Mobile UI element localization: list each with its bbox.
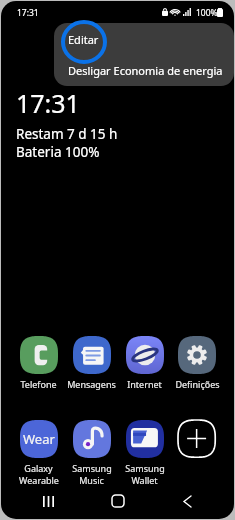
staticText: 100% (196, 7, 218, 19)
staticText: Wearable (19, 474, 59, 486)
button[interactable]: Editar (54, 23, 234, 55)
button[interactable]: Add (171, 420, 223, 462)
staticText: Galaxy (24, 462, 53, 474)
button[interactable]: Internet (118, 336, 171, 390)
button[interactable]: Home (96, 483, 140, 519)
staticText: Wear (23, 430, 55, 448)
button[interactable]: Back (165, 483, 209, 519)
staticText: 17:31 (16, 86, 80, 120)
button[interactable]: Mensagens (65, 336, 118, 390)
button[interactable]: Recents (26, 483, 70, 519)
button[interactable]: Definições (171, 336, 223, 390)
button[interactable]: Samsung (65, 420, 118, 486)
staticText: Definições (175, 378, 220, 390)
staticText: Music (79, 474, 104, 486)
staticText: Desligar Economia de energia (68, 63, 223, 78)
button[interactable]: Galaxy (12, 420, 65, 486)
staticText: Mensagens (67, 378, 116, 390)
staticText: Bateria 100% (16, 143, 100, 161)
button[interactable]: Telefone (12, 336, 65, 390)
staticText: Restam 7 d 15 h (16, 125, 118, 143)
staticText: Samsung (125, 462, 165, 474)
staticText: Samsung (72, 462, 112, 474)
staticText: Wallet (131, 474, 158, 486)
staticText: Internet (127, 378, 162, 390)
button[interactable]: Desligar Economia de energia (54, 55, 234, 86)
staticText: Telefone (20, 378, 57, 390)
staticText: Editar (68, 32, 99, 47)
button[interactable]: Samsung (118, 420, 171, 486)
staticText: 17:31 (17, 7, 39, 19)
